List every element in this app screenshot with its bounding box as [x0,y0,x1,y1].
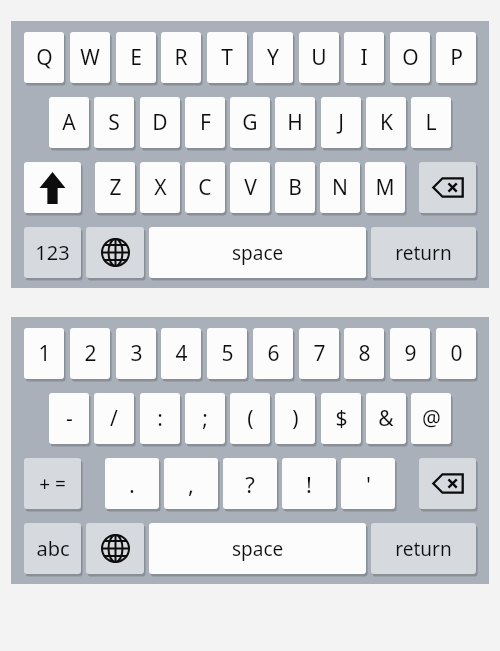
button[interactable]: & [366,393,406,444]
button[interactable]: return [371,227,476,278]
staticText: , [188,469,194,499]
staticText: ! [306,469,312,499]
staticText: space [232,240,284,266]
staticText: $ [335,404,348,433]
button[interactable]: R [161,32,201,83]
button[interactable]: Q [24,32,64,83]
staticText: 9 [404,339,417,368]
button[interactable]: + = [24,458,81,509]
button[interactable]: C [185,162,225,213]
staticText: B [288,173,302,202]
staticText: 5 [221,339,234,368]
button[interactable]: space [149,523,366,574]
button[interactable]: 3 [116,328,156,379]
button[interactable]: U [299,32,339,83]
button[interactable]: ' [341,458,395,509]
button[interactable]: - [49,393,89,444]
button[interactable]: S [94,97,134,148]
button[interactable]: Backspace [419,458,476,509]
button[interactable]: O [390,32,430,83]
staticText: 123 [35,239,70,266]
button[interactable]: ; [185,393,225,444]
button[interactable]: V [230,162,270,213]
button[interactable]: B [275,162,315,213]
button[interactable]: ( [230,393,270,444]
button[interactable]: Shift [24,162,81,213]
staticText: T [221,43,233,72]
staticText: space [232,536,284,562]
staticText: 0 [450,339,463,368]
button[interactable]: 1 [24,328,64,379]
button[interactable]: F [185,97,225,148]
button[interactable]: : [140,393,180,444]
staticText: Q [36,43,53,72]
staticText: ? [245,469,255,499]
button[interactable]: 2 [70,328,110,379]
button[interactable]: ? [223,458,277,509]
button[interactable]: abc [24,523,81,574]
staticText: R [174,43,188,72]
staticText: G [242,108,258,137]
button[interactable]: J [321,97,361,148]
button[interactable]: $ [321,393,361,444]
button[interactable]: Z [95,162,135,213]
staticText: W [80,43,100,72]
button[interactable]: / [94,393,134,444]
staticText: I [360,43,368,72]
button[interactable]: H [275,97,315,148]
staticText: / [110,404,118,433]
button[interactable]: G [230,97,270,148]
staticText: ' [366,469,371,499]
staticText: M [375,173,395,202]
button[interactable]: 7 [299,328,339,379]
button[interactable]: N [320,162,360,213]
staticText: O [402,43,419,72]
button[interactable]: @ [411,393,451,444]
button[interactable]: I [344,32,384,83]
button[interactable]: M [365,162,405,213]
staticText: + = [39,471,66,497]
button[interactable]: 4 [161,328,201,379]
button[interactable]: 123 [24,227,81,278]
staticText: X [154,173,167,202]
button[interactable]: 8 [344,328,384,379]
staticText: N [332,173,348,202]
button[interactable]: 0 [436,328,476,379]
button[interactable]: Change language [86,227,144,278]
button[interactable]: T [207,32,247,83]
button[interactable]: return [371,523,476,574]
button[interactable]: Y [253,32,293,83]
staticText: return [395,240,452,266]
button[interactable]: . [105,458,159,509]
staticText: K [380,108,393,137]
button[interactable]: 6 [253,328,293,379]
staticText: return [395,536,452,562]
button[interactable]: Change language [86,523,144,574]
staticText: E [130,43,142,72]
button[interactable]: 5 [207,328,247,379]
button[interactable]: A [49,97,89,148]
button[interactable]: P [436,32,476,83]
button[interactable]: , [164,458,218,509]
staticText: A [62,108,76,137]
button[interactable]: L [411,97,451,148]
staticText: H [287,108,303,137]
button[interactable]: Backspace [419,162,476,213]
button[interactable]: ) [275,393,315,444]
button[interactable]: 9 [390,328,430,379]
button[interactable]: E [116,32,156,83]
staticText: J [338,108,344,137]
button[interactable]: ! [282,458,336,509]
staticText: 3 [130,339,143,368]
button[interactable]: X [140,162,180,213]
staticText: F [200,108,211,137]
staticText: 7 [313,339,326,368]
staticText: 2 [84,339,97,368]
button[interactable]: W [70,32,110,83]
staticText: @ [422,404,441,433]
button[interactable]: K [366,97,406,148]
button[interactable]: space [149,227,366,278]
staticText: & [378,404,394,433]
staticText: 4 [175,339,188,368]
button[interactable]: D [140,97,180,148]
